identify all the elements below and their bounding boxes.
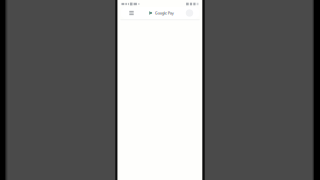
staticText: Google Pay (155, 10, 174, 16)
button[interactable]: Menu (125, 6, 137, 19)
button[interactable]: Account (184, 6, 194, 19)
